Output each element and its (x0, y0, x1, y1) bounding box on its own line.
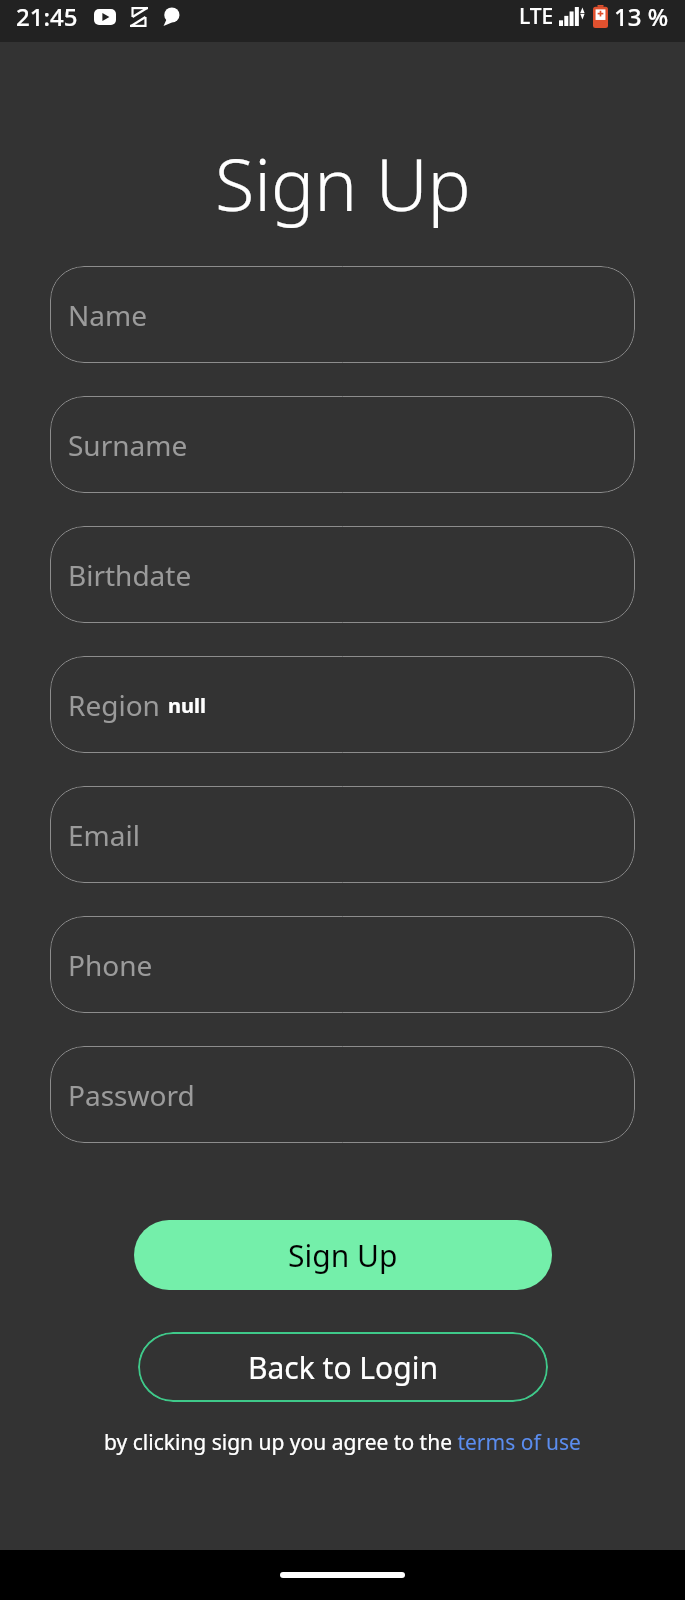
staticText: Surname (68, 426, 188, 464)
button[interactable]: Back to Login (138, 1332, 548, 1402)
staticText: null (168, 692, 206, 719)
button[interactable]: Birthdate (50, 526, 635, 623)
staticText: Password (68, 1076, 195, 1114)
staticText: Birthdate (68, 556, 192, 594)
button[interactable]: Name (50, 266, 635, 363)
staticText: 13 % (614, 0, 669, 33)
staticText: Back to Login (248, 1347, 438, 1388)
button[interactable]: Region (50, 656, 635, 753)
staticText: 21:45 (16, 0, 78, 33)
staticText: Email (68, 816, 140, 854)
button[interactable]: Phone (50, 916, 635, 1013)
staticText: Phone (68, 946, 153, 984)
button[interactable]: by clicking sign up you agree to the ter… (104, 1428, 581, 1457)
staticText: Name (68, 296, 147, 334)
button[interactable]: Surname (50, 396, 635, 493)
other: Home gesture bar (280, 1572, 405, 1578)
staticText: LTE (519, 2, 554, 31)
button[interactable]: Sign Up (134, 1220, 552, 1290)
button[interactable]: Password (50, 1046, 635, 1143)
staticText: Sign Up (215, 134, 471, 232)
button[interactable]: Email (50, 786, 635, 883)
staticText: Sign Up (288, 1235, 398, 1276)
staticText: Region (68, 686, 160, 724)
